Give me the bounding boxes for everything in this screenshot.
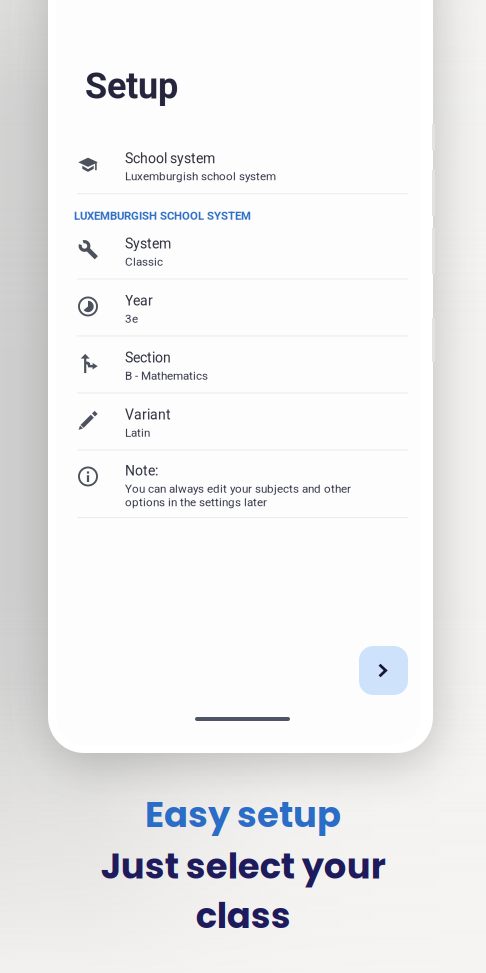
staticText: Note: (125, 462, 158, 479)
staticText: Setup (85, 65, 178, 107)
staticText: Variant (125, 406, 171, 423)
button[interactable]: Continue (359, 646, 408, 695)
staticText: 3e (125, 312, 138, 325)
staticText: Easy setup (145, 790, 341, 839)
staticText: Classic (125, 255, 163, 268)
button[interactable]: Section (56, 336, 421, 393)
staticText: LUXEMBURGISH SCHOOL SYSTEM (74, 209, 251, 222)
staticText: School system (125, 150, 215, 167)
staticText: Just select your class (100, 841, 385, 940)
staticText: B - Mathematics (125, 369, 208, 382)
staticText: Luxemburgish school system (125, 170, 276, 183)
button[interactable]: Variant (56, 393, 421, 450)
button[interactable]: System (56, 222, 421, 279)
staticText: Year (125, 292, 153, 309)
staticText: Section (125, 349, 171, 366)
staticText: System (125, 235, 171, 252)
staticText: You can always edit your subjects and ot… (125, 482, 351, 509)
button[interactable]: School system (56, 137, 421, 194)
button[interactable]: Year (56, 279, 421, 336)
staticText: Latin (125, 426, 150, 439)
button[interactable]: Note: (56, 450, 421, 518)
